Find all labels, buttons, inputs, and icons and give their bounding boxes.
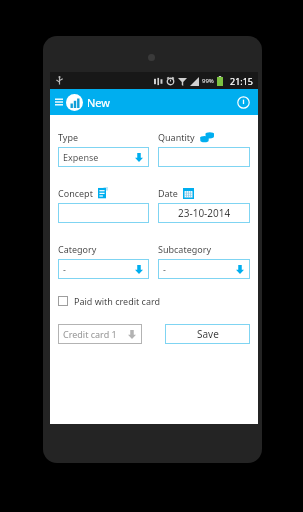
staticText: 23-10-2014 — [178, 206, 231, 220]
staticText: Concept — [58, 187, 93, 199]
staticText: Expense — [63, 151, 99, 163]
staticText: 99% — [202, 77, 214, 85]
button[interactable] — [58, 203, 149, 223]
button[interactable]: Paid with credit card — [58, 295, 161, 307]
staticText: Save — [197, 327, 219, 341]
button[interactable]: 23-10-2014 — [158, 203, 250, 223]
staticText: Subcategory — [158, 243, 212, 255]
button[interactable]: Credit card 1 — [58, 324, 142, 344]
button[interactable] — [158, 147, 250, 167]
staticText: 21:15 — [230, 75, 254, 87]
staticText: Date — [158, 187, 178, 199]
staticText: - — [63, 263, 66, 275]
staticText: New — [87, 95, 110, 110]
staticText: Paid with credit card — [74, 295, 161, 307]
staticText: Credit card 1 — [63, 328, 117, 340]
staticText: - — [163, 263, 166, 275]
button[interactable]: - — [158, 259, 250, 279]
staticText: Quantity — [158, 131, 195, 143]
staticText: Type — [58, 131, 79, 143]
staticText: Category — [58, 243, 97, 255]
button[interactable]: - — [58, 259, 149, 279]
button[interactable]: Open navigation menu — [53, 96, 65, 108]
button[interactable]: Save — [165, 324, 250, 344]
button[interactable]: Expense — [58, 147, 149, 167]
button[interactable]: Info — [234, 93, 252, 111]
